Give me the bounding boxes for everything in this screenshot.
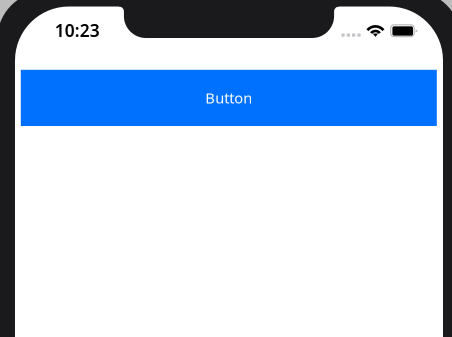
button[interactable]: Button — [21, 70, 437, 126]
staticText: Button — [205, 88, 252, 108]
staticText: 10:23 — [55, 19, 100, 32]
